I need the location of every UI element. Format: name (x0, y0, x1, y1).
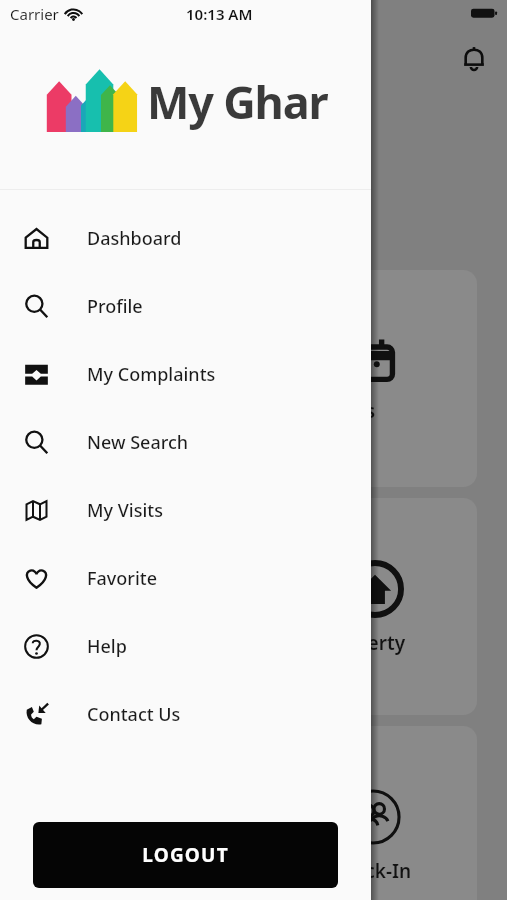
button[interactable]: Favorite (0, 544, 371, 612)
staticText: Help (87, 634, 127, 659)
button[interactable]: Profile (0, 272, 371, 340)
button[interactable]: My Complaints (0, 340, 371, 408)
button[interactable]: My Visits (0, 476, 371, 544)
staticText: Dashboard (87, 226, 182, 251)
staticText: Contact Us (87, 702, 181, 727)
staticText: operty (344, 630, 406, 656)
button[interactable]: heck-In (300, 726, 477, 900)
button[interactable]: nts (300, 270, 477, 487)
staticText: My Ghar (147, 71, 328, 132)
button[interactable]: New Search (0, 408, 371, 476)
button[interactable]: Notifications (454, 38, 494, 78)
staticText: nts (346, 398, 376, 424)
button[interactable]: Contact Us (0, 680, 371, 748)
button[interactable]: operty (300, 498, 477, 715)
staticText: Carrier (10, 4, 59, 24)
button[interactable]: Help (0, 612, 371, 680)
staticText: 10:13 AM (186, 4, 253, 24)
staticText: LOGOUT (142, 842, 229, 868)
staticText: My Visits (87, 498, 163, 523)
staticText: My Complaints (87, 362, 216, 387)
staticText: heck-In (342, 858, 412, 884)
staticText: New Search (87, 430, 189, 455)
staticText: Favorite (87, 566, 157, 591)
button[interactable]: Dashboard (0, 204, 371, 272)
button[interactable]: LOGOUT (33, 822, 338, 888)
staticText: Profile (87, 294, 143, 319)
